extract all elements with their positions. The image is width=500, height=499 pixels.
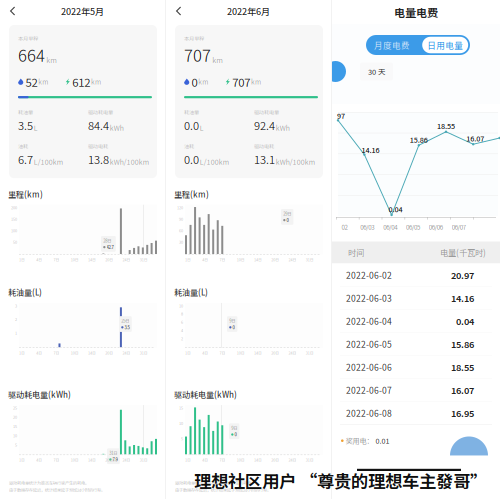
staticText: 1日 <box>19 457 25 463</box>
staticText: 6.7 <box>18 151 33 167</box>
button[interactable]: 日用电量 <box>422 37 470 53</box>
staticText: 24日 <box>122 257 130 262</box>
staticText: 2 <box>181 336 183 341</box>
staticText: 由于数据存在延迟，统计结果延于预加24小时的行程。 <box>175 487 271 493</box>
button[interactable]: 2022-06-05 <box>332 332 500 355</box>
staticText: 13.8 <box>88 151 109 167</box>
button[interactable]: 2022-06-03 <box>332 286 500 309</box>
staticText: 2022-06-03 <box>346 292 392 304</box>
staticText: L <box>200 123 204 133</box>
staticText: 月度电费 <box>374 39 410 51</box>
staticText: 7.9 <box>113 456 118 463</box>
staticText: 驱动电耗 <box>88 142 108 150</box>
staticText: 18.55 <box>437 121 455 131</box>
staticText: 16.07 <box>466 133 484 144</box>
staticText: 10 <box>13 433 17 438</box>
staticText: 7日 <box>219 457 225 463</box>
staticText: 4日 <box>202 350 208 355</box>
staticText: 驱动耗电量 <box>88 108 113 116</box>
staticText: 4日 <box>36 457 42 463</box>
staticText: 31日 <box>140 350 148 355</box>
staticText: 15 <box>13 423 17 429</box>
staticText: km <box>212 54 223 65</box>
staticText: 4日 <box>202 257 208 262</box>
staticText: 14日 <box>254 257 262 262</box>
staticText: 10日 <box>237 350 245 355</box>
button[interactable]: 30 天 <box>360 62 393 80</box>
staticText: 耗油量(L) <box>174 286 208 298</box>
staticText: 14日 <box>254 457 262 463</box>
staticText: 29日 <box>283 210 291 217</box>
staticText: 30 天 <box>368 66 385 77</box>
staticText: kWh/100km <box>276 157 315 167</box>
staticText: 14日 <box>254 350 262 355</box>
staticText: 25日 <box>121 318 129 324</box>
staticText: 2022-06-07 <box>346 384 392 396</box>
staticText: 2022-06-06 <box>346 361 392 373</box>
staticText: 8 <box>181 311 183 317</box>
staticText: 0 <box>287 217 289 223</box>
staticText: 1日 <box>19 257 25 262</box>
staticText: 1 <box>15 330 17 336</box>
staticText: 理想社区用户 “尊贵的理想车主發哥” <box>194 468 487 493</box>
staticText: 14.16 <box>451 291 474 305</box>
staticText: 耗油量 <box>184 108 199 116</box>
staticText: 0 <box>235 431 237 438</box>
staticText: 16.95 <box>451 406 474 420</box>
staticText: 2022年5月 <box>61 4 104 17</box>
button[interactable]: 月度电费 <box>366 35 418 55</box>
staticText: 3 <box>15 303 17 308</box>
staticText: 0.0 <box>184 151 199 167</box>
staticText: 31日 <box>140 457 148 463</box>
staticText: 28日 <box>103 237 111 244</box>
staticText: 84.4 <box>88 117 109 133</box>
staticText: 4 <box>181 327 183 333</box>
staticText: 52 <box>25 73 37 90</box>
staticText: 2022-06-08 <box>346 407 392 419</box>
staticText: 24日 <box>288 350 296 355</box>
staticText: 驱动耗电量统计为能否车辆行驶产生的耗电。 <box>9 480 89 486</box>
staticText: 3.5 <box>125 324 130 330</box>
button[interactable]: 2022-06-04 <box>332 309 500 332</box>
staticText: 612 <box>72 73 90 90</box>
button[interactable]: 返回 <box>4 1 21 21</box>
staticText: 10日 <box>237 257 245 262</box>
staticText: 06/07 <box>452 223 466 231</box>
staticText: 0.01 <box>376 435 390 446</box>
staticText: 0.0 <box>184 117 199 133</box>
staticText: 664 <box>18 42 45 66</box>
staticText: kWh/100km <box>110 157 149 167</box>
staticText: 时间 <box>348 246 364 258</box>
staticText: 4日 <box>36 350 42 355</box>
staticText: 油耗 <box>18 142 28 150</box>
staticText: 100 <box>11 228 17 233</box>
staticText: 油耗 <box>184 142 194 150</box>
staticText: 24日 <box>122 350 130 355</box>
staticText: 60 <box>179 228 183 233</box>
button[interactable]: 2022-06-06 <box>332 355 500 378</box>
staticText: 20日 <box>271 350 279 355</box>
staticText: 20日 <box>271 457 279 463</box>
staticText: 耗油量 <box>18 108 33 116</box>
staticText: 7日 <box>219 350 225 355</box>
staticText: L/100km <box>34 157 63 167</box>
staticText: km <box>198 77 208 86</box>
button[interactable]: 2022-06-08 <box>332 401 500 424</box>
staticText: 50 <box>13 239 17 245</box>
button[interactable]: 2022-06-02 <box>332 263 500 286</box>
staticText: 电量(千瓦时) <box>440 246 486 258</box>
staticText: 14.16 <box>361 145 379 155</box>
button[interactable]: 2022-06-07 <box>332 378 500 401</box>
staticText: 31日 <box>140 257 148 262</box>
staticText: L <box>34 123 38 133</box>
staticText: 4日 <box>202 457 208 463</box>
staticText: 9日 <box>231 425 237 431</box>
button[interactable]: 返回 <box>170 1 187 21</box>
staticText: 24日 <box>122 457 130 463</box>
staticText: 120 <box>177 205 183 210</box>
staticText: 15.86 <box>410 134 428 145</box>
staticText: 30 <box>179 239 183 245</box>
staticText: 13.1 <box>254 151 275 167</box>
staticText: 707 <box>232 73 250 90</box>
staticText: 9日 <box>229 318 235 324</box>
